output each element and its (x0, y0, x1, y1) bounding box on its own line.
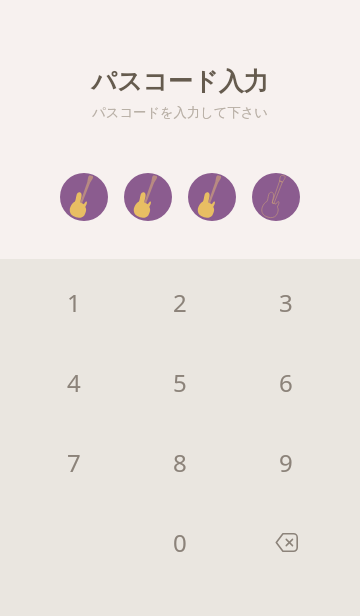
staticText: 5 (173, 366, 187, 399)
button[interactable]: 4 (21, 342, 127, 422)
button[interactable]: 1 (21, 262, 127, 342)
button[interactable]: Delete (233, 502, 339, 582)
button[interactable]: 7 (21, 422, 127, 502)
staticText: 6 (279, 366, 293, 399)
staticText: 1 (67, 286, 81, 319)
staticText: パスコードを入力して下さい (92, 104, 268, 121)
staticText: 9 (279, 446, 293, 479)
button[interactable]: 5 (127, 342, 233, 422)
staticText: 7 (67, 446, 81, 479)
button[interactable]: 3 (233, 262, 339, 342)
staticText: 0 (173, 526, 187, 559)
staticText: 3 (279, 286, 293, 319)
staticText: 8 (173, 446, 187, 479)
button[interactable]: 6 (233, 342, 339, 422)
staticText: パスコード入力 (91, 66, 269, 97)
button[interactable]: 0 (127, 502, 233, 582)
staticText: 4 (67, 366, 81, 399)
button[interactable]: 8 (127, 422, 233, 502)
staticText: 2 (173, 286, 187, 319)
button[interactable]: 9 (233, 422, 339, 502)
button[interactable]: 2 (127, 262, 233, 342)
